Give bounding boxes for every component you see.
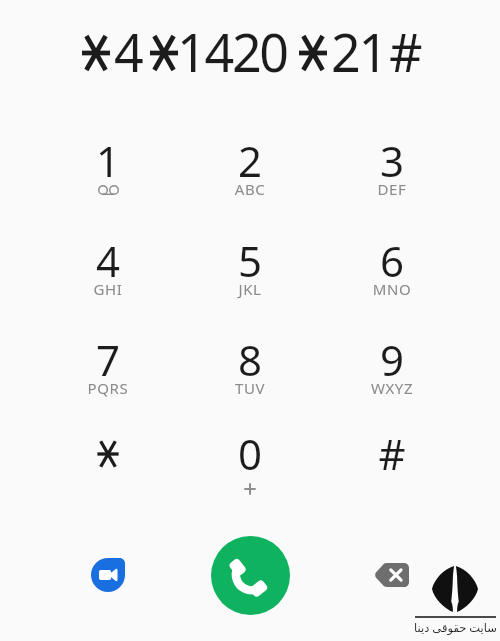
staticText: ABC (179, 179, 321, 201)
button[interactable]: 7 (37, 316, 179, 415)
staticText: 5 (179, 232, 321, 282)
staticText: MNO (321, 279, 463, 301)
staticText: 21 (331, 16, 386, 87)
staticText: 1 (37, 132, 179, 182)
staticText: WXYZ (321, 378, 463, 400)
button[interactable]: Call (211, 536, 290, 615)
staticText: 8 (179, 331, 321, 381)
staticText: # (321, 425, 463, 475)
button[interactable]: pound (321, 410, 463, 509)
button[interactable]: 2 (179, 117, 321, 216)
staticText: 4 (37, 232, 179, 282)
button[interactable]: 1 (37, 117, 179, 216)
button[interactable]: Backspace (364, 553, 420, 597)
button[interactable]: star (37, 410, 179, 498)
button[interactable]: 6 (321, 217, 463, 316)
staticText: 0 (179, 425, 321, 475)
staticText: 1420 (177, 16, 287, 87)
button[interactable]: Video call (80, 547, 136, 603)
staticText: DEF (321, 179, 463, 201)
staticText: TUV (179, 378, 321, 400)
staticText: 7 (37, 331, 179, 381)
button[interactable]: 5 (179, 217, 321, 316)
staticText: 3 (321, 132, 463, 182)
button[interactable]: 4 (37, 217, 179, 316)
staticText: GHI (37, 279, 179, 301)
staticText: PQRS (37, 378, 179, 400)
staticText: JKL (179, 279, 321, 301)
staticText: 4 (114, 16, 142, 87)
button[interactable]: 0 (179, 410, 321, 509)
button[interactable]: 3 (321, 117, 463, 216)
staticText: 2 (179, 132, 321, 182)
staticText: 9 (321, 331, 463, 381)
staticText: سایت حقوقی دینا (413, 620, 498, 638)
button[interactable]: 9 (321, 316, 463, 415)
staticText: 6 (321, 232, 463, 282)
button[interactable]: 8 (179, 316, 321, 415)
staticText: # (389, 16, 421, 87)
